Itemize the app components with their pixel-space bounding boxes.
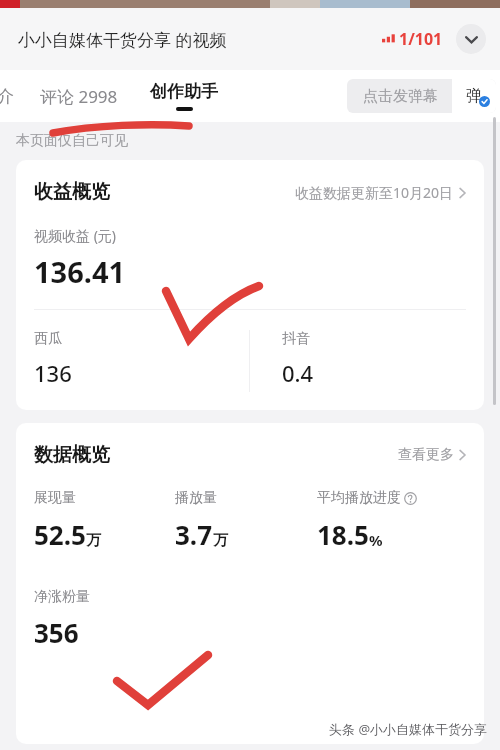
staticText: 小小自媒体干货分享 的视频 [18, 28, 227, 51]
staticText: 抖音 [282, 330, 310, 348]
staticText: 136.41 [34, 252, 126, 291]
staticText: 18.5 [317, 517, 369, 552]
staticText: 播放量 [175, 489, 217, 507]
button[interactable]: 介 [0, 70, 26, 122]
staticText: 3.7 [175, 517, 213, 552]
button[interactable]: 点击发弹幕 [347, 79, 496, 113]
staticText: 净涨粉量 [34, 588, 90, 606]
staticText: 平均播放进度 [317, 489, 401, 507]
staticText: 西瓜 [34, 330, 62, 348]
staticText: 1/101 [399, 28, 443, 50]
staticText: 356 [34, 615, 79, 650]
button[interactable]: 1/101 [380, 28, 445, 50]
button[interactable]: Expand list [456, 24, 486, 54]
staticText: 数据概览 [34, 443, 110, 467]
staticText: 点击发弹幕 [363, 87, 438, 106]
staticText: 头条 @小小自媒体干货分享 [329, 720, 488, 738]
staticText: 万 [86, 531, 101, 550]
button[interactable]: 评论 2998 [26, 70, 132, 122]
button[interactable]: 创作助手 [132, 70, 236, 122]
staticText: 收益概览 [34, 180, 110, 204]
staticText: 查看更多 [398, 446, 454, 464]
staticText: 视频收益 (元) [34, 226, 117, 245]
staticText: 136 [34, 358, 72, 388]
staticText: 弹 [466, 86, 482, 106]
button[interactable]: 查看更多 [398, 446, 466, 464]
staticText: 万 [213, 531, 228, 550]
staticText: 介 [0, 86, 14, 107]
staticText: 创作助手 [150, 81, 218, 102]
button[interactable]: 收益数据更新至10月20日 [295, 183, 466, 202]
staticText: 本页面仅自己可见 [16, 132, 128, 150]
staticText: % [369, 530, 383, 550]
staticText: 52.5 [34, 517, 86, 552]
staticText: 评论 2998 [40, 85, 118, 108]
staticText: 0.4 [282, 358, 314, 388]
staticText: 收益数据更新至10月20日 [295, 183, 454, 202]
staticText: 展现量 [34, 489, 76, 507]
